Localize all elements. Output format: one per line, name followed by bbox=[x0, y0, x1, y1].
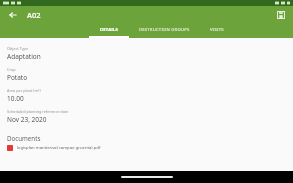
staticText: Potato bbox=[7, 73, 28, 82]
staticText: legisplan mantienval campao gruenta).pdf bbox=[17, 145, 101, 151]
button[interactable]: Area per plant (m²) bbox=[0, 85, 293, 106]
button[interactable]: legisplan mantienval campao gruenta).pdf bbox=[0, 143, 293, 153]
button[interactable]: Home gesture bbox=[121, 176, 173, 178]
button[interactable]: Save bbox=[274, 8, 288, 22]
staticText: DETAILS bbox=[100, 27, 119, 33]
button[interactable]: VISITS bbox=[195, 24, 239, 38]
button[interactable]: DESTRUCTION GROUPS bbox=[133, 24, 195, 38]
staticText: Area per plant (m²) bbox=[7, 88, 41, 93]
staticText: 10.00 bbox=[7, 94, 24, 103]
staticText: Crop bbox=[7, 67, 16, 72]
staticText: DESTRUCTION GROUPS bbox=[139, 27, 190, 33]
staticText: Adaptation bbox=[7, 52, 41, 61]
button[interactable]: Object Type bbox=[0, 43, 293, 64]
staticText: Object Type bbox=[7, 46, 29, 51]
staticText: Scheduled planting reference date bbox=[7, 109, 69, 114]
button[interactable]: Back bbox=[6, 8, 20, 22]
button[interactable]: Scheduled planting reference date bbox=[0, 106, 293, 127]
staticText: Nov 23, 2020 bbox=[7, 115, 47, 124]
button[interactable]: Crop bbox=[0, 64, 293, 85]
staticText: VISITS bbox=[210, 27, 224, 33]
staticText: A02 bbox=[27, 10, 41, 20]
button[interactable]: DETAILS bbox=[85, 24, 133, 38]
staticText: Documents bbox=[7, 134, 41, 142]
